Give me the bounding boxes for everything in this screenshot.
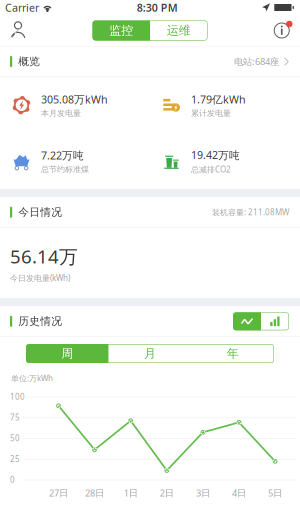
staticText: 25	[10, 454, 20, 464]
staticText: 5日	[268, 487, 282, 499]
staticText: 装机容量: 211.08MW	[212, 207, 289, 217]
staticText: 1日	[124, 487, 138, 499]
staticText: 历史情况	[18, 315, 62, 328]
staticText: 单位:万kWh	[11, 373, 53, 384]
staticText: 305.08万kWh	[41, 92, 108, 106]
staticText: 56.14万	[10, 244, 78, 269]
staticText: 今日发电量(kWh)	[10, 273, 70, 283]
button[interactable]: 月	[109, 344, 191, 363]
staticText: 周	[61, 346, 73, 361]
staticText: 7.22万吨	[41, 148, 84, 162]
staticText: 3日	[196, 487, 210, 499]
button[interactable]: Account	[2, 15, 34, 46]
staticText: 4日	[232, 487, 246, 499]
staticText: 累计发电量	[191, 108, 231, 118]
button[interactable]: Bar chart	[261, 312, 289, 330]
button[interactable]: 监控	[92, 20, 150, 40]
staticText: 月	[144, 346, 156, 361]
staticText: 2日	[160, 487, 174, 499]
staticText: 75	[10, 412, 20, 423]
staticText: 监控	[109, 23, 133, 38]
button[interactable]: Notifications	[265, 15, 298, 46]
staticText: 28日	[85, 487, 104, 499]
button[interactable]: 运维	[150, 20, 207, 40]
staticText: 总减排CO2	[191, 164, 231, 175]
staticText: 100	[10, 391, 25, 402]
staticText: 电站:684座	[234, 55, 279, 68]
staticText: 本月发电量	[41, 108, 81, 118]
staticText: 年	[227, 346, 239, 361]
button[interactable]: 年	[191, 344, 274, 363]
staticText: 概览	[18, 55, 40, 68]
button[interactable]: Line chart	[233, 312, 261, 330]
staticText: 今日情况	[18, 206, 62, 219]
staticText: 27日	[49, 487, 68, 499]
staticText: 总节约标准煤	[41, 164, 89, 174]
staticText: 19.42万吨	[191, 148, 240, 162]
staticText: 50	[10, 433, 20, 443]
staticText: 运维	[167, 23, 191, 38]
staticText: 8:30 PM	[137, 0, 178, 15]
button[interactable]: 周	[26, 344, 109, 363]
staticText: Carrier	[5, 0, 39, 15]
staticText: 0	[10, 474, 15, 485]
staticText: 1.79亿kWh	[191, 92, 246, 106]
